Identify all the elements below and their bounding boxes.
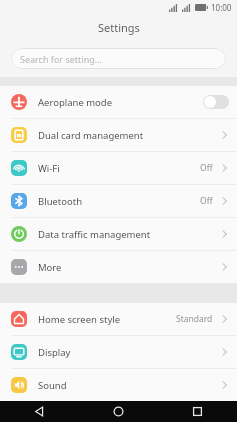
button[interactable]: Back: [0, 401, 79, 422]
button[interactable]: Aeroplane mode toggle: [203, 95, 229, 109]
button[interactable]: Bluetooth: [0, 185, 237, 217]
button[interactable]: Recents: [158, 401, 237, 422]
button[interactable]: Home: [79, 401, 158, 422]
staticText: Home screen style: [38, 313, 121, 326]
staticText: Wi-Fi: [38, 162, 60, 175]
button[interactable]: Home screen style: [0, 303, 237, 335]
button[interactable]: Dual card management: [0, 119, 237, 151]
staticText: Settings: [98, 20, 140, 35]
button[interactable]: Search for setting...: [11, 48, 226, 69]
staticText: Dual card management: [38, 129, 144, 142]
button[interactable]: Wi-Fi: [0, 152, 237, 184]
staticText: Bluetooth: [38, 195, 83, 208]
button[interactable]: Sound: [0, 369, 237, 401]
staticText: Off: [200, 162, 213, 174]
staticText: Off: [200, 195, 213, 207]
staticText: Aeroplane mode: [38, 96, 113, 109]
staticText: Display: [38, 346, 71, 359]
staticText: Sound: [38, 379, 67, 392]
button[interactable]: More: [0, 251, 237, 283]
staticText: Data traffic management: [38, 228, 151, 241]
staticText: Search for setting...: [20, 53, 102, 65]
staticText: 10:00: [211, 2, 232, 13]
staticText: More: [38, 261, 62, 274]
button[interactable]: Display: [0, 336, 237, 368]
button[interactable]: Data traffic management: [0, 218, 237, 250]
button[interactable]: Aeroplane mode: [0, 86, 237, 118]
staticText: Standard: [176, 313, 213, 325]
